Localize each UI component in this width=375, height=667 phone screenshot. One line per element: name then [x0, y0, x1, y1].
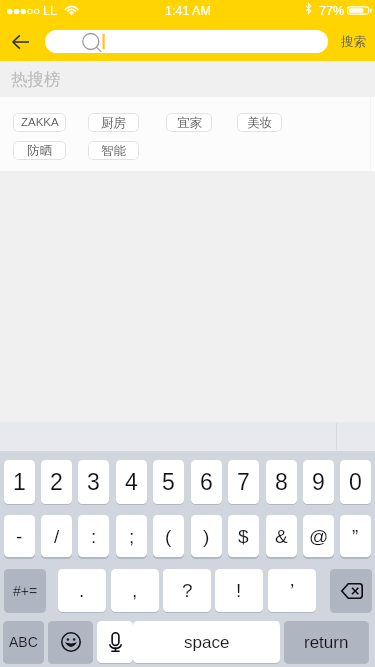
- staticText: 0: [349, 469, 362, 495]
- staticText: space: [184, 633, 230, 652]
- staticText: ’: [290, 580, 295, 601]
- staticText: 2: [50, 469, 63, 495]
- button[interactable]: ): [191, 515, 222, 557]
- button[interactable]: #+=: [4, 569, 46, 612]
- button[interactable]: ?: [163, 569, 211, 612]
- button[interactable]: Delete: [330, 569, 372, 612]
- button[interactable]: !: [215, 569, 263, 612]
- button[interactable]: &: [266, 515, 297, 557]
- button[interactable]: -: [4, 515, 35, 557]
- button[interactable]: 防晒: [13, 141, 66, 160]
- staticText: 9: [312, 469, 325, 495]
- staticText: &: [275, 526, 288, 547]
- staticText: 智能: [101, 143, 126, 159]
- button[interactable]: 2: [41, 460, 72, 504]
- button[interactable]: /: [41, 515, 72, 557]
- button[interactable]: Emoji: [48, 621, 93, 663]
- staticText: 防晒: [27, 143, 52, 159]
- button[interactable]: 美妆: [237, 113, 282, 132]
- button[interactable]: ’: [268, 569, 316, 612]
- button[interactable]: 5: [153, 460, 184, 504]
- staticText: 7: [237, 469, 250, 495]
- staticText: .: [79, 580, 85, 601]
- staticText: ,: [132, 580, 138, 601]
- staticText: 美妆: [247, 115, 272, 131]
- staticText: return: [304, 633, 349, 652]
- staticText: ABC: [9, 634, 38, 650]
- staticText: 77%: [319, 4, 345, 18]
- button[interactable]: [45, 30, 328, 53]
- button[interactable]: 9: [303, 460, 334, 504]
- button[interactable]: Back: [0, 22, 40, 61]
- button[interactable]: ABC: [3, 621, 44, 663]
- button[interactable]: 7: [228, 460, 259, 504]
- staticText: 6: [200, 469, 213, 495]
- staticText: ): [203, 526, 210, 547]
- button[interactable]: Dictation: [97, 621, 133, 663]
- button[interactable]: @: [303, 515, 334, 557]
- button[interactable]: $: [228, 515, 259, 557]
- staticText: #+=: [13, 583, 38, 599]
- staticText: /: [54, 526, 60, 547]
- staticText: $: [238, 526, 249, 547]
- staticText: ZAKKA: [21, 116, 59, 129]
- button[interactable]: 宜家: [166, 113, 212, 132]
- staticText: 热搜榜: [11, 69, 61, 90]
- staticText: 4: [125, 469, 138, 495]
- button[interactable]: 0: [340, 460, 371, 504]
- staticText: 5: [162, 469, 175, 495]
- staticText: ”: [352, 526, 359, 547]
- staticText: 3: [87, 469, 100, 495]
- staticText: 厨房: [101, 115, 126, 131]
- button[interactable]: 搜索: [332, 22, 375, 61]
- staticText: 8: [275, 469, 288, 495]
- button[interactable]: ZAKKA: [13, 113, 66, 132]
- staticText: (: [165, 526, 172, 547]
- button[interactable]: return: [284, 621, 369, 663]
- button[interactable]: :: [78, 515, 109, 557]
- staticText: -: [16, 526, 23, 547]
- staticText: LL: [43, 4, 57, 18]
- button[interactable]: 8: [266, 460, 297, 504]
- button[interactable]: space: [133, 621, 280, 663]
- staticText: 1: [13, 469, 26, 495]
- staticText: 搜索: [341, 34, 366, 50]
- button[interactable]: ;: [116, 515, 147, 557]
- button[interactable]: 厨房: [88, 113, 139, 132]
- button[interactable]: 1: [4, 460, 35, 504]
- staticText: !: [236, 580, 242, 601]
- staticText: :: [91, 526, 97, 547]
- button[interactable]: ,: [111, 569, 159, 612]
- button[interactable]: .: [58, 569, 106, 612]
- button[interactable]: 3: [78, 460, 109, 504]
- staticText: ?: [182, 580, 193, 601]
- button[interactable]: 4: [116, 460, 147, 504]
- button[interactable]: ”: [340, 515, 371, 557]
- staticText: 1:41 AM: [165, 4, 211, 18]
- staticText: ;: [129, 526, 135, 547]
- button[interactable]: 智能: [88, 141, 139, 160]
- staticText: @: [309, 526, 329, 547]
- button[interactable]: 6: [191, 460, 222, 504]
- staticText: 宜家: [177, 115, 202, 131]
- button[interactable]: (: [153, 515, 184, 557]
